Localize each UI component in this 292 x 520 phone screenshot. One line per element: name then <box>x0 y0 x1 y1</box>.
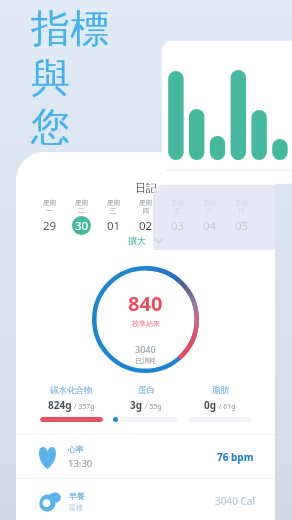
staticText: 擴大 <box>128 235 146 246</box>
button[interactable]: 星期 <box>97 199 129 235</box>
staticText: 已消耗 <box>135 356 156 365</box>
staticText: 3g <box>130 398 143 412</box>
button[interactable]: 星期 <box>225 199 257 235</box>
staticText: 30 <box>75 218 89 234</box>
staticText: 心率 <box>68 444 84 454</box>
staticText: 星期 <box>139 199 152 207</box>
staticText: 碳水化合物 <box>50 385 93 396</box>
staticText: 二 <box>78 207 85 215</box>
staticText: 星期 <box>235 199 248 207</box>
staticText: 五 <box>174 207 181 215</box>
staticText: 星期 <box>171 199 184 207</box>
button[interactable]: 早餐 <box>16 479 275 520</box>
staticText: 02 <box>139 218 153 234</box>
staticText: 指標 <box>31 4 109 53</box>
staticText: 日 <box>238 207 245 215</box>
button[interactable]: 心率 <box>16 435 275 479</box>
staticText: / 55g <box>143 402 162 412</box>
button[interactable]: 星期 <box>34 199 65 235</box>
staticText: 05 <box>235 218 249 234</box>
staticText: 3040 Cal <box>215 494 255 508</box>
staticText: 三 <box>110 207 117 215</box>
staticText: 脂肪 <box>212 385 229 396</box>
button[interactable]: 擴大 <box>16 235 275 246</box>
staticText: 早餐 <box>69 491 85 501</box>
staticText: 與 <box>31 53 70 102</box>
staticText: / 357g <box>72 402 95 412</box>
staticText: 校準結果 <box>132 319 160 328</box>
staticText: 29 <box>43 218 57 234</box>
staticText: 824g <box>48 398 72 412</box>
staticText: 04 <box>203 218 217 234</box>
staticText: 日記 <box>135 181 157 195</box>
staticText: 840 <box>128 290 163 317</box>
button[interactable]: 星期 <box>129 199 161 235</box>
button[interactable]: 星期 <box>193 199 225 235</box>
staticText: 76 bpm <box>217 450 254 464</box>
staticText: 星期 <box>75 199 88 207</box>
staticText: 一 <box>46 207 53 215</box>
staticText: 蛋白 <box>138 385 155 396</box>
staticText: 星期 <box>107 199 120 207</box>
staticText: 3040 <box>135 343 156 355</box>
staticText: 03 <box>171 218 185 234</box>
staticText: / 61g <box>217 402 236 412</box>
staticText: 01 <box>107 218 121 234</box>
staticText: 您 <box>31 102 70 151</box>
staticText: 六 <box>206 207 213 215</box>
staticText: 富樓 <box>69 503 83 512</box>
button[interactable]: 星期 <box>65 199 97 235</box>
staticText: 星期 <box>43 199 56 207</box>
staticText: 13:30 <box>68 457 93 470</box>
staticText: 星期 <box>203 199 216 207</box>
staticText: 0g <box>204 398 217 412</box>
staticText: 四 <box>142 207 149 215</box>
button[interactable]: 星期 <box>161 199 193 235</box>
